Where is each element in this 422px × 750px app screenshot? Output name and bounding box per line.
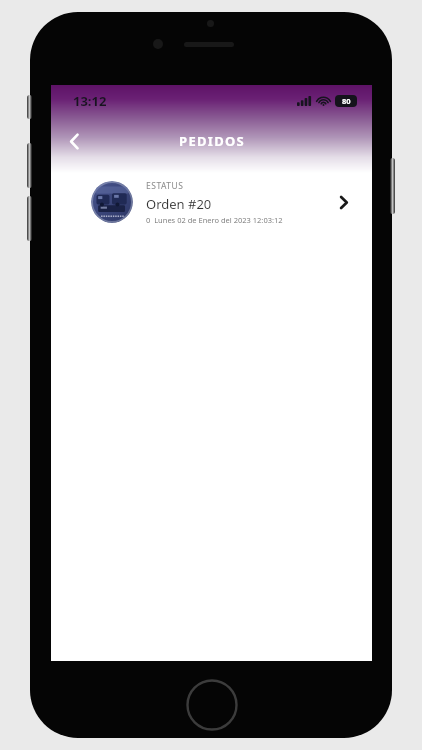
button[interactable]: Back <box>56 124 92 158</box>
staticText: 80 <box>342 96 351 106</box>
staticText: ESTATUS <box>146 180 184 192</box>
staticText: 13:12 <box>73 92 107 110</box>
staticText: PEDIDOS <box>179 132 245 150</box>
staticText: Orden #20 <box>146 195 212 213</box>
staticText: 0 Lunes 02 de Enero del 2023 12:03:12 <box>146 215 283 225</box>
button[interactable]: ESTATUS <box>51 173 372 231</box>
